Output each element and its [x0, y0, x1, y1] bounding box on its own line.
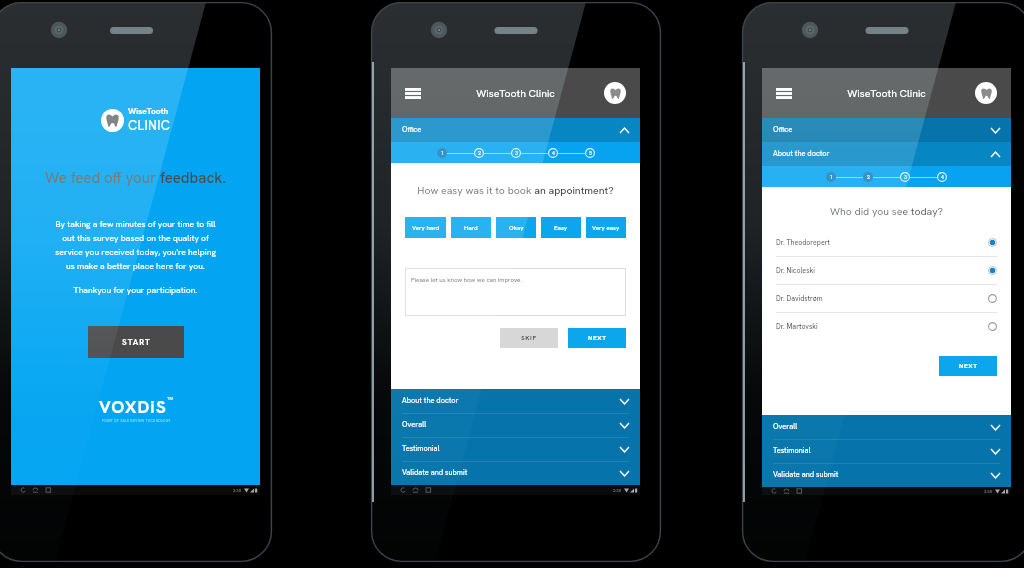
button[interactable]: Open navigation menu	[398, 78, 428, 108]
staticText: Testimonial	[402, 444, 620, 454]
staticText: 3	[515, 150, 518, 157]
staticText: 1	[830, 174, 833, 181]
staticText: Office	[402, 125, 620, 135]
staticText: WiseTooth Clinic	[391, 86, 640, 100]
staticText: 2	[478, 150, 481, 157]
staticText: By taking a few minutes of your time to …	[11, 218, 260, 272]
button[interactable]: Overall	[391, 413, 640, 437]
button[interactable]: Open navigation menu	[769, 78, 799, 108]
staticText: 2:30	[984, 489, 993, 494]
button[interactable]: NEXT	[939, 356, 997, 376]
staticText: Dr. Theodorepert	[776, 238, 988, 247]
staticText: Validate and submit	[402, 468, 620, 478]
button[interactable]: Testimonial	[391, 437, 640, 461]
staticText: NEXT	[588, 334, 607, 342]
button[interactable]: Clinic profile	[975, 82, 997, 104]
staticText: 5	[589, 150, 592, 157]
staticText: TM	[167, 396, 173, 401]
staticText: 4	[941, 174, 944, 181]
button[interactable]: Hard	[451, 217, 491, 238]
staticText: Office	[773, 125, 991, 135]
staticText: How easy was it to book an appointment?	[417, 183, 614, 197]
staticText: Testimonial	[773, 446, 991, 456]
button[interactable]: Validate and submit	[391, 461, 640, 485]
button[interactable]: Dr. Martovski	[776, 313, 997, 341]
button[interactable]: START	[88, 326, 184, 358]
button[interactable]: Overall	[762, 415, 1011, 439]
staticText: Easy	[554, 224, 568, 232]
staticText: Dr. Davidstrøm	[776, 294, 988, 303]
staticText: 2:30	[233, 488, 242, 493]
button[interactable]: NEXT	[568, 328, 626, 348]
staticText: Hard	[464, 224, 478, 232]
staticText: Thankyou for your participation.	[11, 284, 260, 295]
staticText: Who did you see today?	[762, 204, 1011, 218]
staticText: Okay	[509, 224, 524, 232]
button[interactable]: Clinic profile	[604, 82, 626, 104]
button[interactable]: Testimonial	[762, 439, 1011, 463]
staticText: Validate and submit	[773, 470, 991, 480]
button[interactable]: Okay	[496, 217, 536, 238]
button[interactable]: Dr. Davidstrøm	[776, 285, 997, 313]
button[interactable]: Dr. Theodorepert	[776, 229, 997, 257]
staticText: Very hard	[412, 224, 440, 232]
staticText: 3	[904, 174, 907, 181]
staticText: About the doctor	[402, 396, 620, 406]
button[interactable]: Easy	[541, 217, 581, 238]
staticText: Overall	[773, 422, 991, 432]
staticText: Very easy	[592, 224, 620, 232]
staticText: WiseTooth Clinic	[762, 86, 1011, 100]
button[interactable]: About the doctor	[391, 389, 640, 413]
button[interactable]: Office	[391, 118, 640, 142]
staticText: START	[122, 337, 151, 348]
staticText: 1	[441, 150, 444, 157]
staticText: Dr. Martovski	[776, 322, 988, 331]
staticText: About the doctor	[773, 149, 991, 159]
button[interactable]: SKIP	[500, 328, 558, 348]
staticText: 2:30	[613, 488, 622, 493]
staticText: NEXT	[959, 362, 978, 370]
button[interactable]: Very hard	[405, 217, 446, 238]
staticText: We feed off your feedback.	[45, 168, 226, 188]
button[interactable]: Office	[762, 118, 1011, 142]
staticText: CLINIC	[128, 117, 171, 134]
button[interactable]: Validate and submit	[762, 463, 1011, 487]
staticText: VOXDiS	[99, 395, 167, 418]
staticText: WiseTooth	[128, 106, 169, 117]
button[interactable]: Very easy	[586, 217, 626, 238]
staticText: 4	[552, 150, 555, 157]
button[interactable]: Dr. Nicoleski	[776, 257, 997, 285]
staticText: 2	[867, 174, 870, 181]
staticText: Dr. Nicoleski	[776, 266, 988, 275]
staticText: POINT OF SALE REVIEW TECHNOLOGY	[102, 419, 171, 423]
staticText: SKIP	[521, 334, 537, 342]
staticText: Please let us know how we can improve.	[411, 276, 522, 284]
staticText: Overall	[402, 420, 620, 430]
button[interactable]: About the doctor	[762, 142, 1011, 166]
